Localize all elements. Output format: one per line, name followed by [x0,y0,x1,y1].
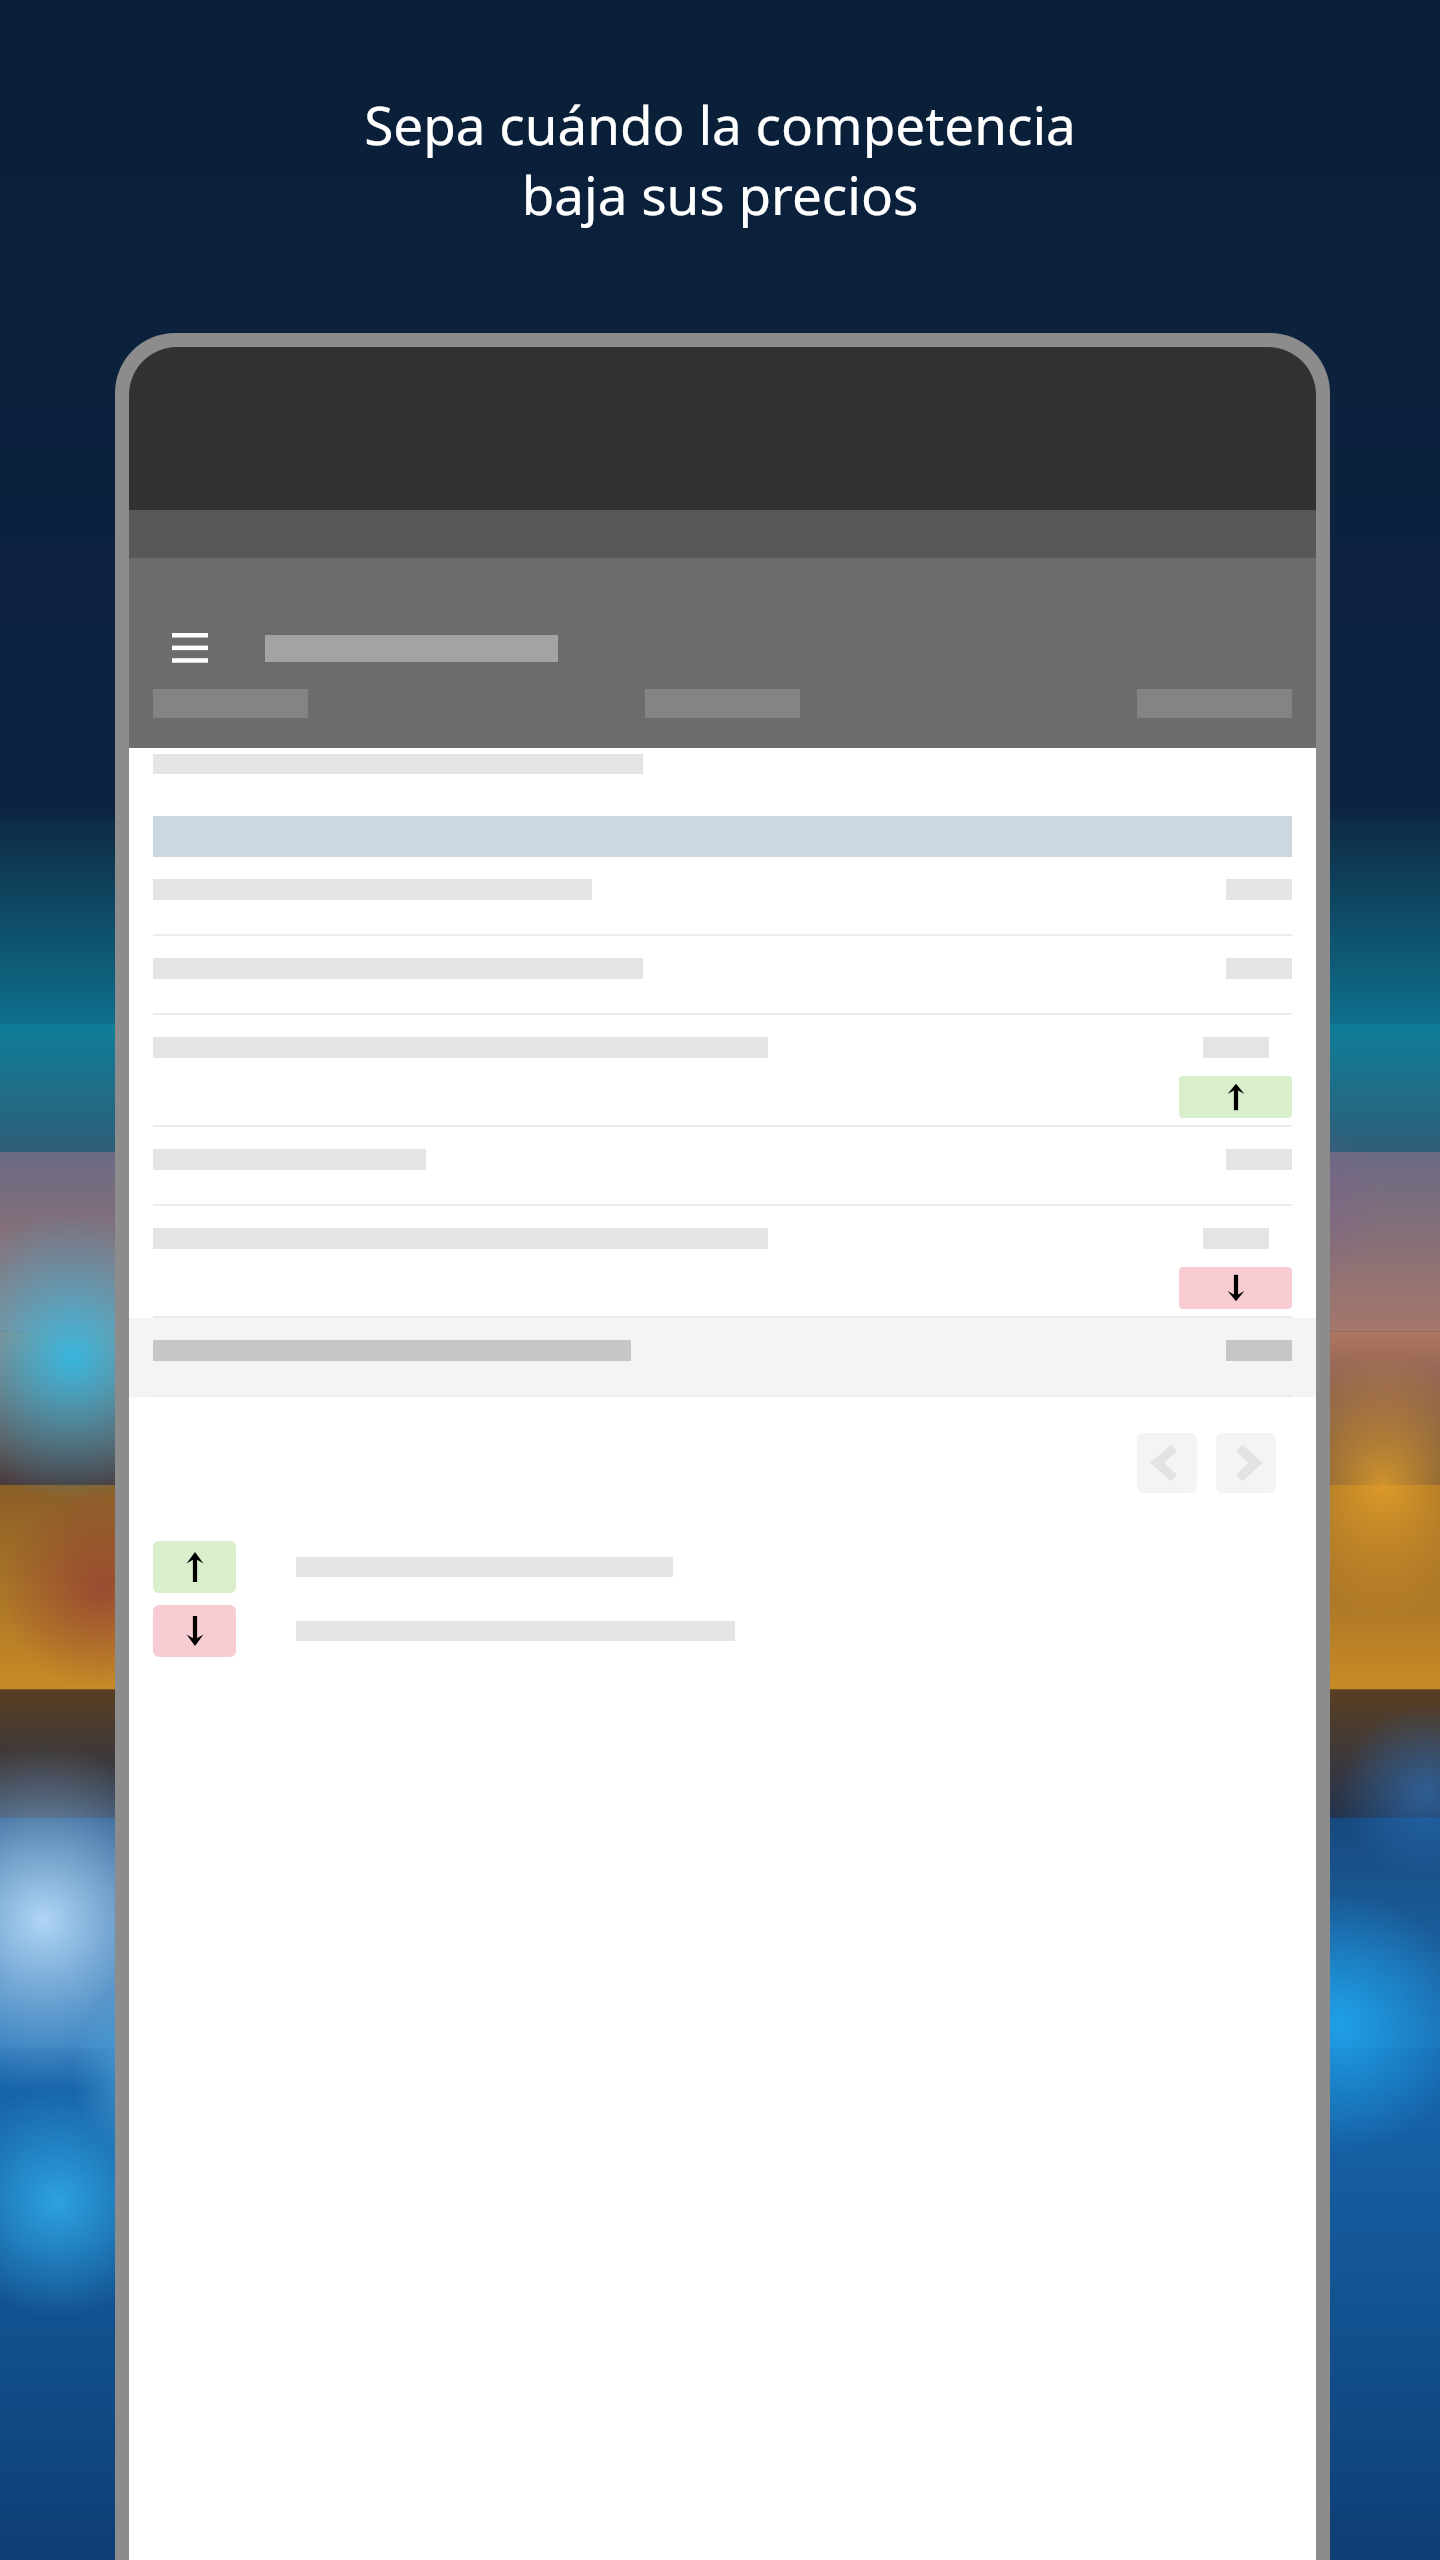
staticText: Sepa cuándo la competencia baja sus prec… [364,88,1076,230]
button[interactable]: Price down [1179,1267,1292,1309]
other: Price increased [153,1541,236,1593]
button[interactable]: Next page [1216,1433,1276,1493]
button[interactable]: Price increased [153,1541,1316,1593]
button[interactable] [129,936,1316,1015]
button[interactable]: Price up [1179,1076,1292,1118]
button[interactable]: Price decreased [153,1605,1316,1657]
button[interactable]: Price up [129,1015,1316,1127]
button[interactable] [129,1318,1316,1397]
button[interactable] [129,1127,1316,1206]
button[interactable]: Menu [167,626,213,670]
button[interactable]: Previous page [1137,1433,1197,1493]
other: Price decreased [153,1605,236,1657]
button[interactable]: Price down [129,1206,1316,1318]
button[interactable] [129,857,1316,936]
